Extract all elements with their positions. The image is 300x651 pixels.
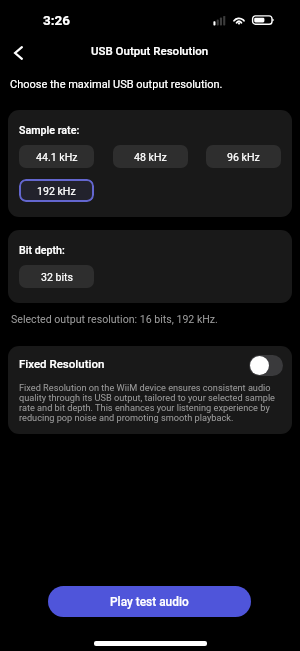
staticText: Choose the maximal USB output resolution… [10,78,223,91]
staticText: 32 bits [41,271,73,283]
button[interactable]: 192 kHz [19,179,94,202]
staticText: Fixed Resolution [19,357,105,370]
button[interactable]: 96 kHz [206,145,281,168]
staticText: 192 kHz [37,185,76,197]
button[interactable]: Back [5,40,32,66]
staticText: Fixed Resolution on the WiiM device ensu… [19,382,278,423]
staticText: Selected output resolution: 16 bits, 192… [11,313,218,325]
staticText: Bit depth: [19,244,65,257]
staticText: 48 kHz [134,151,167,163]
button[interactable]: 32 bits [19,265,94,288]
staticText: Sample rate: [19,124,80,137]
button[interactable]: 48 kHz [113,145,188,168]
button[interactable]: Play test audio [48,586,251,617]
staticText: USB Output Resolution [91,44,209,57]
staticText: Play test audio [110,595,189,609]
staticText: 3:26 [43,12,71,28]
staticText: 96 kHz [227,151,260,163]
staticText: 44.1 kHz [36,151,78,163]
button[interactable]: Fixed Resolution toggle [249,355,283,376]
button[interactable]: 44.1 kHz [19,145,94,168]
